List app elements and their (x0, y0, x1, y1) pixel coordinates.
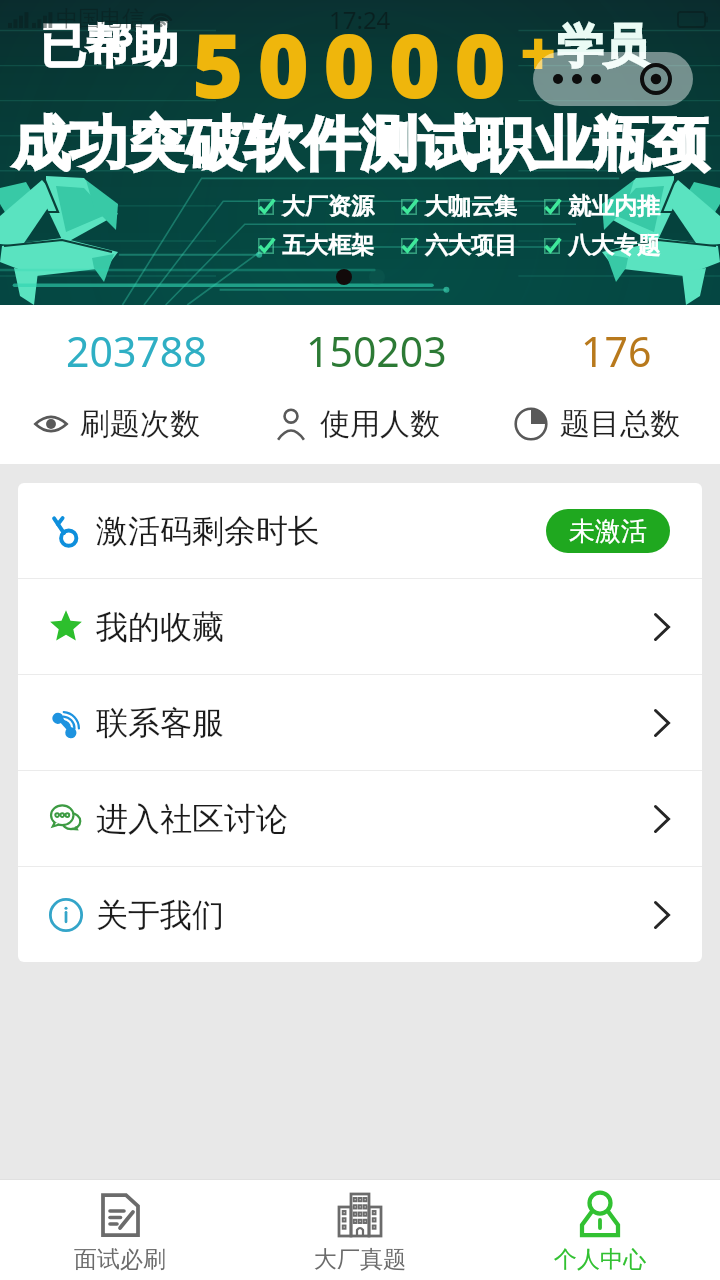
staticText: 联系客服 (96, 703, 224, 743)
button[interactable]: 个人中心 (480, 1180, 720, 1280)
button[interactable]: 关于我们 (18, 867, 702, 962)
staticText: 学员 (557, 18, 649, 76)
staticText: 50000 (192, 4, 520, 124)
staticText: 进入社区讨论 (96, 799, 288, 839)
staticText: 激活码剩余时长 (96, 511, 320, 551)
staticText: 关于我们 (96, 895, 224, 935)
button[interactable]: 进入社区讨论 (18, 771, 702, 866)
staticText: 203788 (66, 323, 207, 379)
staticText: + (520, 10, 557, 94)
staticText: 就业内推 (568, 192, 660, 221)
button[interactable]: 未激活 (546, 509, 670, 553)
staticText: 17:24 (329, 3, 391, 36)
staticText: 八大专题 (568, 231, 660, 260)
button[interactable]: 150203 (240, 305, 480, 464)
staticText: 面试必刷 (74, 1245, 166, 1274)
staticText: 刷题次数 (80, 405, 200, 443)
button[interactable]: 大厂真题 (240, 1180, 480, 1280)
staticText: 成功突破软件测试职业瓶颈 (12, 108, 708, 181)
staticText: 大厂资源 (282, 192, 374, 221)
staticText: 题目总数 (560, 405, 680, 443)
staticText: 五大框架 (282, 231, 374, 260)
button[interactable]: More (533, 52, 619, 106)
staticText: 个人中心 (554, 1245, 646, 1274)
button[interactable]: 176 (480, 305, 720, 464)
staticText: 未激活 (569, 515, 647, 548)
button[interactable]: 我的收藏 (18, 579, 702, 674)
staticText: 我的收藏 (96, 607, 224, 647)
staticText: 使用人数 (320, 405, 440, 443)
button[interactable]: Close mini program (619, 52, 693, 106)
staticText: 中国电信 (56, 5, 144, 33)
staticText: 六大项目 (425, 231, 517, 260)
staticText: 大厂真题 (314, 1245, 406, 1274)
staticText: 150203 (306, 323, 447, 379)
staticText: 已帮助 (40, 18, 178, 76)
staticText: 176 (581, 323, 652, 379)
button[interactable]: 面试必刷 (0, 1180, 240, 1280)
button[interactable]: 联系客服 (18, 675, 702, 770)
staticText: 大咖云集 (425, 192, 517, 221)
button[interactable]: 激活码剩余时长 (18, 483, 702, 578)
button[interactable]: 203788 (0, 305, 240, 464)
